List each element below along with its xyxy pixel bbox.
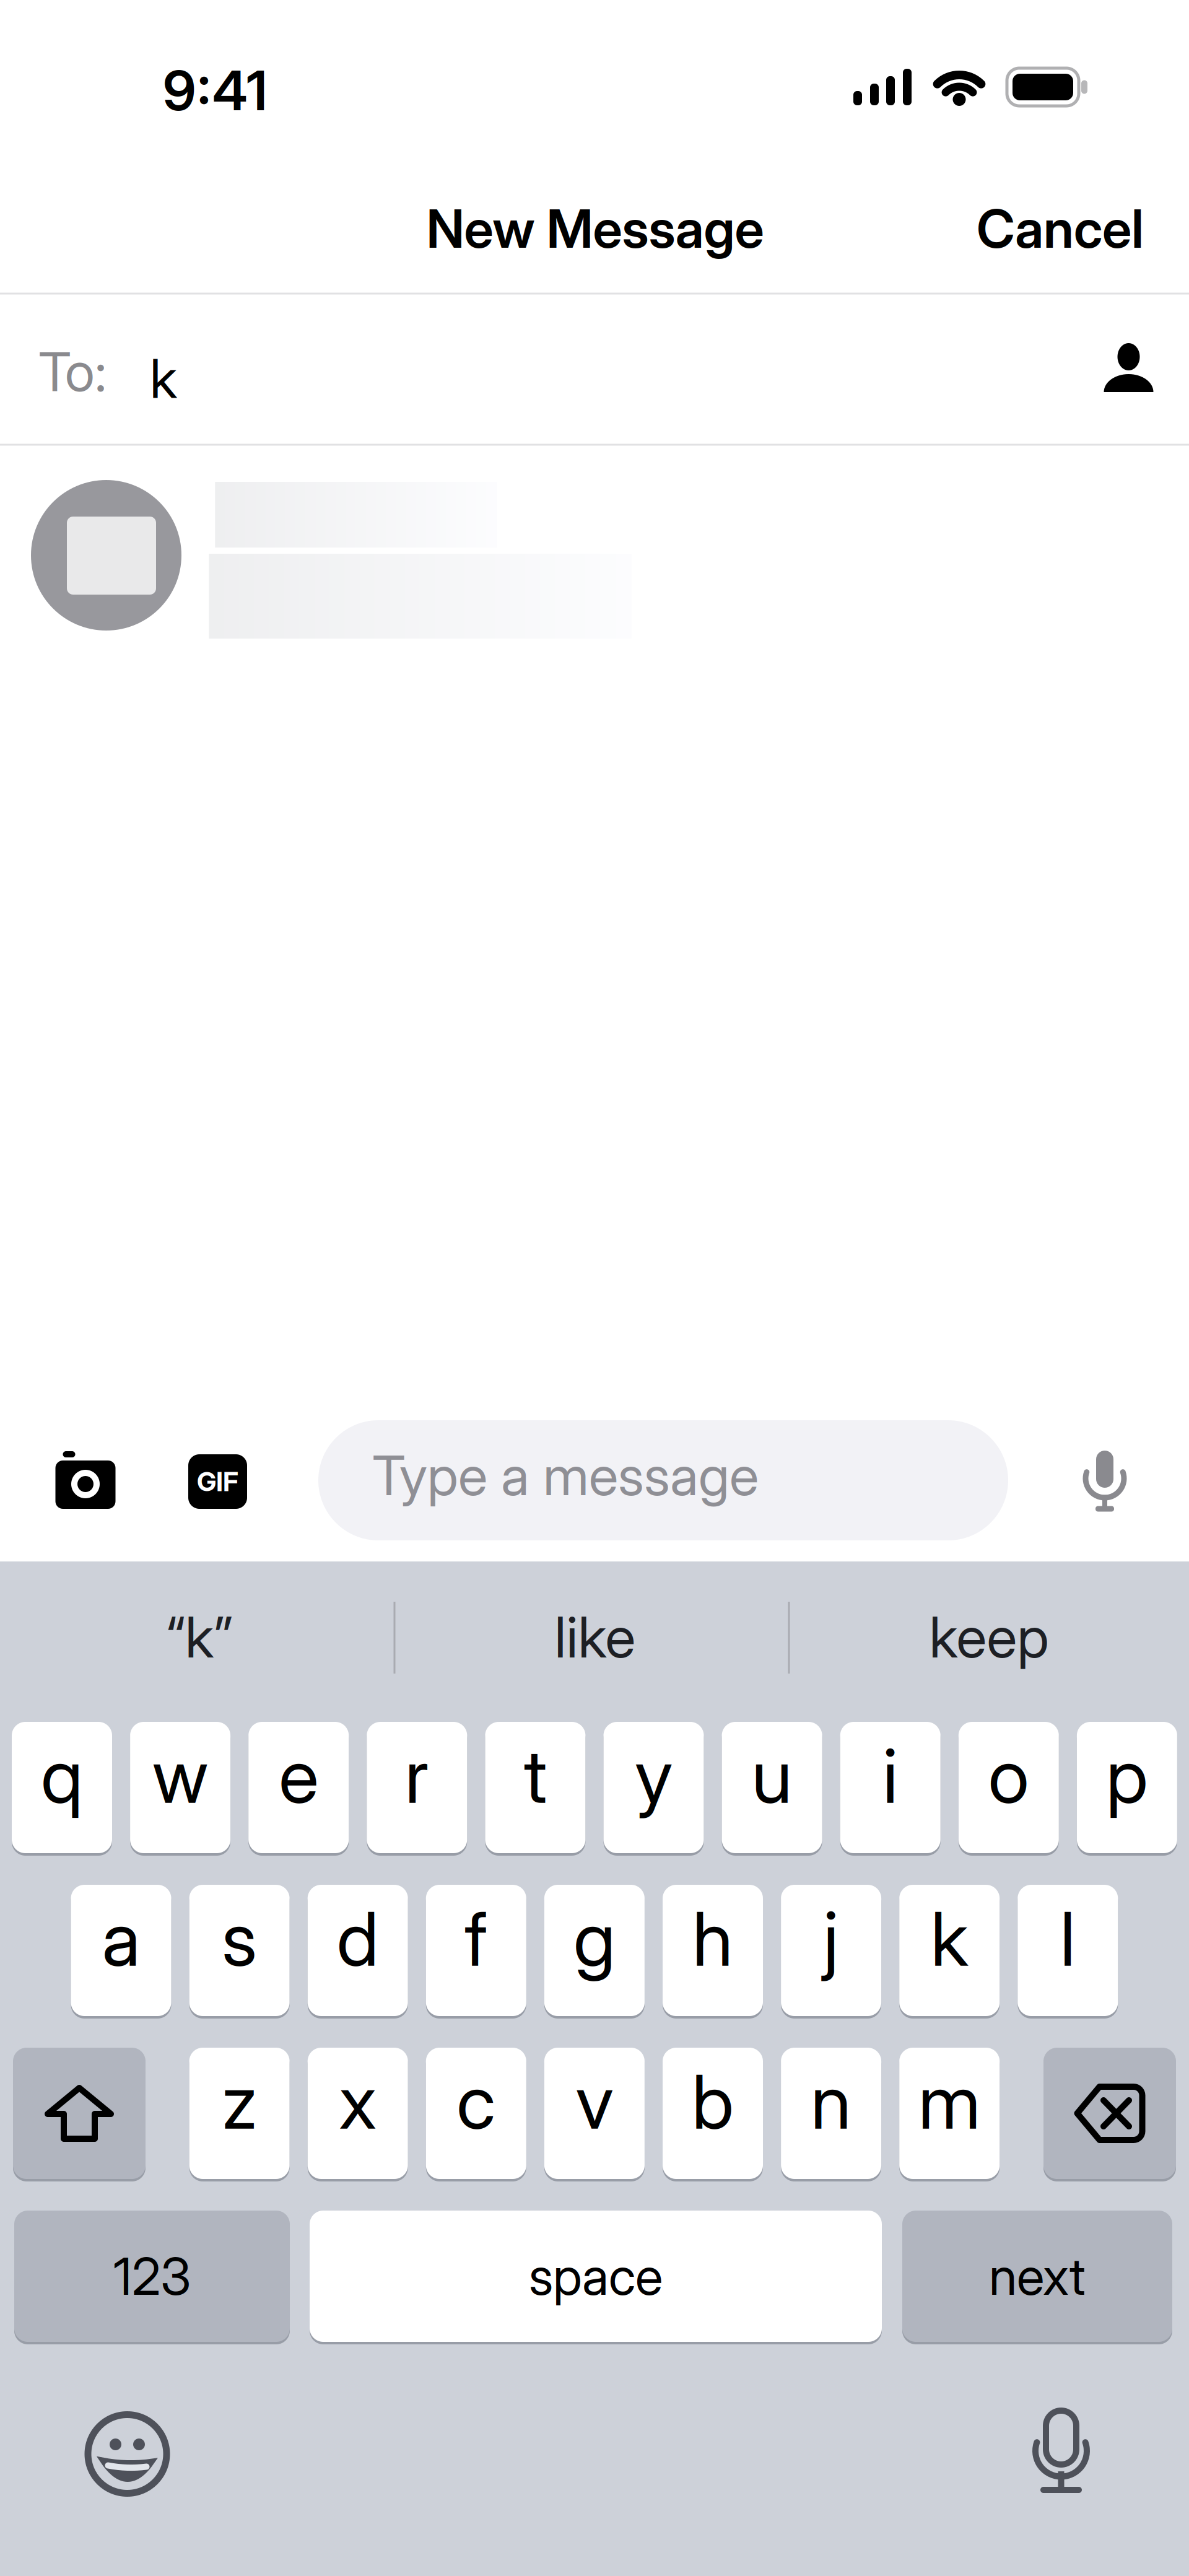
staticText: y bbox=[635, 1732, 673, 1820]
button[interactable]: z bbox=[189, 2046, 290, 2180]
button[interactable]: i bbox=[840, 1721, 940, 1854]
staticText: Cancel bbox=[977, 197, 1144, 260]
button[interactable]: b bbox=[663, 2046, 763, 2180]
button[interactable]: g bbox=[544, 1884, 645, 2017]
button[interactable]: Dictate bbox=[1080, 1447, 1130, 1514]
staticText: z bbox=[222, 2058, 257, 2145]
button[interactable]: y bbox=[603, 1721, 704, 1854]
button[interactable]: Delete bbox=[1043, 2046, 1176, 2180]
button[interactable]: Contact suggestion bbox=[31, 480, 632, 639]
button[interactable]: k bbox=[899, 1884, 1000, 2017]
button[interactable]: next bbox=[902, 2209, 1172, 2343]
button[interactable]: like bbox=[409, 1581, 781, 1693]
button[interactable]: a bbox=[71, 1884, 171, 2017]
button[interactable]: t bbox=[485, 1721, 585, 1854]
staticText: v bbox=[576, 2058, 613, 2145]
staticText: f bbox=[465, 1895, 488, 1983]
staticText: “k” bbox=[166, 1604, 233, 1670]
button[interactable]: q bbox=[12, 1721, 112, 1854]
button[interactable]: Numbers bbox=[14, 2209, 290, 2343]
button[interactable]: Camera bbox=[54, 1451, 116, 1511]
staticText: space bbox=[529, 2246, 663, 2306]
staticText: k bbox=[150, 347, 177, 410]
staticText: l bbox=[1060, 1895, 1076, 1983]
staticText: i bbox=[883, 1732, 898, 1820]
button[interactable]: o bbox=[959, 1721, 1059, 1854]
button[interactable]: h bbox=[663, 1884, 763, 2017]
staticText: h bbox=[692, 1895, 733, 1983]
staticText: GIF bbox=[197, 1466, 238, 1497]
button[interactable]: e bbox=[248, 1721, 349, 1854]
button[interactable]: j bbox=[781, 1884, 881, 2017]
staticText: c bbox=[457, 2058, 496, 2145]
staticText: Type a message bbox=[372, 1443, 759, 1508]
button[interactable]: Dictation bbox=[1032, 2407, 1091, 2497]
staticText: q bbox=[41, 1732, 83, 1820]
button[interactable]: Type a message bbox=[318, 1420, 1008, 1540]
button[interactable]: f bbox=[426, 1884, 526, 2017]
button[interactable]: w bbox=[130, 1721, 230, 1854]
button[interactable]: n bbox=[781, 2046, 881, 2180]
staticText: u bbox=[752, 1732, 792, 1820]
staticText: p bbox=[1106, 1732, 1148, 1820]
button[interactable]: r bbox=[367, 1721, 467, 1854]
button[interactable]: c bbox=[426, 2046, 526, 2180]
button[interactable]: space bbox=[310, 2209, 882, 2343]
button[interactable]: Emoji bbox=[88, 2415, 167, 2493]
button[interactable]: keep bbox=[803, 1581, 1175, 1693]
button[interactable]: u bbox=[722, 1721, 822, 1854]
staticText: x bbox=[339, 2058, 377, 2145]
staticText: t bbox=[524, 1732, 547, 1820]
button[interactable]: “k” bbox=[14, 1581, 385, 1693]
button[interactable]: v bbox=[544, 2046, 645, 2180]
staticText: a bbox=[102, 1895, 140, 1983]
button[interactable]: GIF bbox=[188, 1454, 247, 1509]
staticText: like bbox=[555, 1604, 636, 1670]
staticText: e bbox=[279, 1732, 318, 1820]
button[interactable]: Shift bbox=[13, 2046, 146, 2180]
staticText: 123 bbox=[113, 2246, 191, 2306]
button[interactable]: m bbox=[899, 2046, 1000, 2180]
staticText: w bbox=[152, 1732, 208, 1820]
button[interactable]: p bbox=[1077, 1721, 1177, 1854]
staticText: o bbox=[988, 1732, 1029, 1820]
button[interactable]: l bbox=[1018, 1884, 1118, 2017]
staticText: b bbox=[692, 2058, 734, 2145]
staticText: k bbox=[931, 1895, 968, 1983]
staticText: New Message bbox=[426, 197, 764, 260]
staticText: n bbox=[811, 2058, 852, 2145]
button[interactable]: d bbox=[308, 1884, 408, 2017]
staticText: g bbox=[573, 1895, 615, 1983]
button[interactable]: x bbox=[308, 2046, 408, 2180]
staticText: r bbox=[405, 1732, 429, 1820]
button[interactable]: Cancel bbox=[924, 188, 1189, 269]
staticText: keep bbox=[929, 1604, 1049, 1670]
staticText: j bbox=[823, 1895, 839, 1983]
button[interactable]: s bbox=[189, 1884, 290, 2017]
staticText: d bbox=[337, 1895, 379, 1983]
button[interactable]: Add Contact bbox=[1104, 343, 1153, 392]
staticText: m bbox=[918, 2058, 981, 2145]
staticText: next bbox=[989, 2246, 1086, 2306]
staticText: 9:41 bbox=[163, 58, 267, 123]
staticText: To: bbox=[38, 340, 107, 403]
staticText: s bbox=[222, 1895, 257, 1983]
